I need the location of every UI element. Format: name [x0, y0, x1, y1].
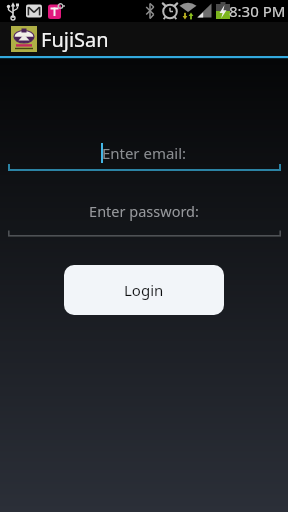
staticText: FujiSan	[41, 26, 109, 53]
staticText: 8:30 PM	[229, 1, 286, 21]
button[interactable]: Login	[64, 265, 224, 315]
button[interactable]: Enter password:	[0, 201, 288, 221]
button[interactable]: Enter email:	[0, 143, 288, 163]
staticText: Login	[124, 280, 164, 300]
